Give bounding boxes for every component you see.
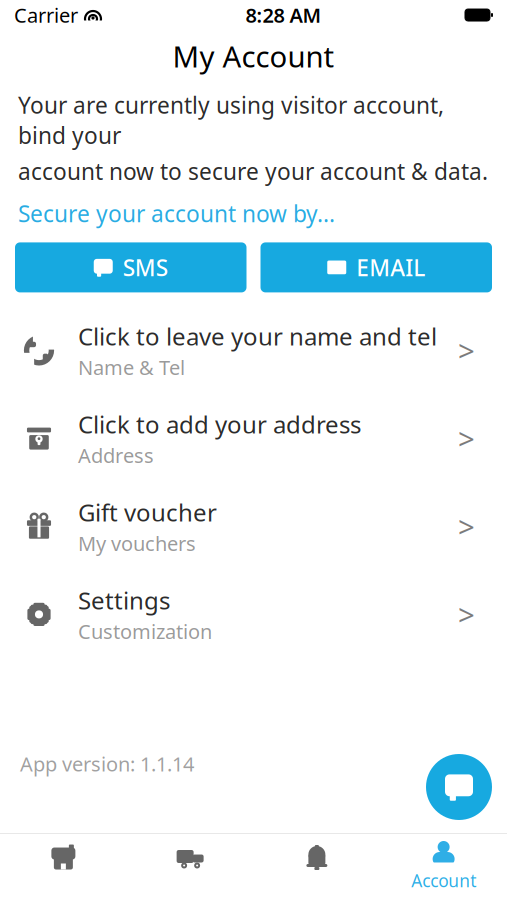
staticText: Carrier — [14, 2, 78, 28]
staticText: Settings — [78, 584, 170, 616]
button[interactable]: SMS — [15, 242, 246, 292]
staticText: Account — [411, 869, 476, 892]
staticText: Gift voucher — [78, 496, 217, 528]
button[interactable]: Notifications — [253, 837, 380, 897]
staticText: Click to leave your name and tel — [78, 320, 437, 352]
button[interactable]: Account — [380, 837, 507, 897]
staticText: > — [458, 507, 475, 546]
staticText: My Account — [172, 36, 334, 75]
button[interactable]: Deliveries — [127, 837, 254, 897]
staticText: > — [458, 419, 475, 458]
staticText: EMAIL — [356, 252, 425, 282]
staticText: Customization — [78, 618, 212, 645]
staticText: Click to add your address — [78, 408, 361, 440]
staticText: 8:28 AM — [245, 2, 321, 28]
staticText: Name & Tel — [78, 354, 185, 381]
staticText: Your are currently using visitor account… — [18, 90, 444, 150]
staticText: Secure your account now by... — [18, 198, 335, 228]
staticText: My vouchers — [78, 530, 196, 557]
staticText: Address — [78, 442, 154, 469]
staticText: SMS — [123, 252, 168, 282]
staticText: App version: 1.1.14 — [20, 750, 194, 777]
button[interactable]: Gift voucher — [0, 482, 507, 570]
button[interactable]: Click to add your address — [0, 394, 507, 482]
staticText: > — [458, 595, 475, 634]
button[interactable]: Chat support — [426, 754, 492, 820]
button[interactable]: EMAIL — [260, 242, 492, 292]
button[interactable]: Click to leave your name and tel — [0, 306, 507, 394]
button[interactable]: Home — [0, 837, 127, 897]
button[interactable]: Settings — [0, 570, 507, 658]
staticText: > — [458, 331, 475, 370]
staticText: account now to secure your account & dat… — [18, 156, 488, 186]
